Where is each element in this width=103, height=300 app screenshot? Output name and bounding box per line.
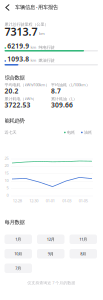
button[interactable]: Back (1, 1, 13, 13)
staticText: 综合数据 (4, 74, 24, 81)
button[interactable]: 11月 (69, 234, 97, 244)
staticText: 01-03 (62, 198, 71, 203)
button[interactable]: 1月 (4, 234, 32, 244)
staticText: 11月 (79, 237, 87, 242)
staticText: 3722.53 (4, 100, 30, 109)
staticText: 能耗趋势 (4, 117, 24, 124)
staticText: 5 (6, 185, 8, 190)
button[interactable]: 10月 (4, 249, 32, 258)
staticText: 12月 (47, 237, 55, 242)
staticText: 01-05 (79, 198, 88, 203)
staticText: 近七天 (4, 130, 16, 135)
staticText: 8月 (80, 251, 86, 256)
staticText: 仅支持查询近 7 个月的数据 (27, 280, 75, 285)
staticText: 10月 (14, 251, 22, 256)
staticText: 累计总行驶里程（公里） (4, 22, 48, 27)
staticText: 6219.9 (7, 41, 29, 50)
staticText: 25 (4, 155, 8, 161)
button[interactable]: 12月 (37, 234, 64, 244)
button[interactable]: 7月 (4, 263, 32, 273)
staticText: 0 (6, 192, 8, 198)
staticText: 油耗 (84, 130, 92, 135)
staticText: 累计耗电（kWh） (4, 96, 36, 101)
staticText: 01-01 (46, 198, 55, 203)
staticText: 累计耗油（L） (51, 96, 77, 101)
staticText: 12-28 (13, 198, 22, 203)
staticText: 7313.7 (4, 24, 37, 39)
staticText: 20 (4, 163, 8, 168)
staticText: 10 (4, 178, 8, 183)
staticText: km 燃油行驶 (30, 57, 54, 63)
button[interactable]: 8月 (69, 249, 97, 258)
staticText: 8.7 (51, 86, 61, 95)
staticText: km 纯电行驶 (30, 44, 54, 50)
staticText: km (39, 31, 45, 36)
staticText: 平均油耗（L/100km） (51, 82, 90, 87)
button[interactable]: 9月 (37, 249, 64, 258)
staticText: 平均电耗（kWh/100km） (4, 82, 49, 87)
staticText: 15 (4, 170, 8, 176)
staticText: 电耗 (67, 130, 75, 135)
staticText: 12-30 (29, 198, 38, 203)
staticText: 车辆信息 · 用车报告 (15, 3, 58, 11)
staticText: 7月 (15, 266, 21, 271)
staticText: 每月数据 (4, 219, 24, 226)
staticText: 1月 (15, 237, 21, 242)
staticText: 1093.8 (7, 54, 29, 63)
staticText: 20.2 (4, 86, 18, 95)
staticText: 309.66 (51, 100, 73, 109)
staticText: 9月 (48, 251, 54, 256)
